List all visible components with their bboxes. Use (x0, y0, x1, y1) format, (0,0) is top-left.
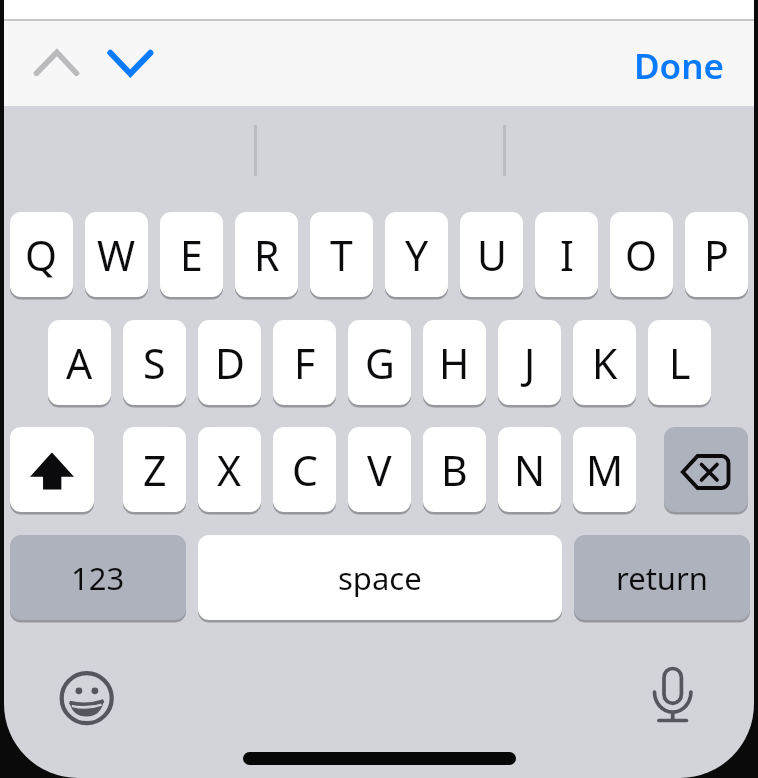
button[interactable]: J (498, 320, 561, 405)
staticText: space (338, 557, 422, 599)
button[interactable] (56, 667, 118, 729)
button[interactable]: T (310, 212, 373, 297)
button[interactable]: N (498, 427, 561, 512)
button[interactable]: S (123, 320, 186, 405)
staticText: L (669, 335, 691, 391)
button[interactable] (644, 660, 702, 726)
button[interactable]: Q (10, 212, 73, 297)
button[interactable]: O (610, 212, 673, 297)
staticText: Y (405, 227, 429, 283)
staticText: I (560, 227, 574, 283)
staticText: D (215, 335, 245, 391)
staticText: V (367, 442, 392, 498)
button[interactable]: D (198, 320, 261, 405)
button[interactable]: R (235, 212, 298, 297)
button[interactable]: F (273, 320, 336, 405)
button[interactable]: P (685, 212, 748, 297)
button[interactable]: H (423, 320, 486, 405)
button[interactable]: Done (614, 34, 744, 98)
button[interactable]: G (348, 320, 411, 405)
button[interactable]: U (460, 212, 523, 297)
staticText: U (477, 227, 507, 283)
staticText: O (625, 227, 658, 283)
button[interactable]: I (535, 212, 598, 297)
staticText: P (704, 227, 729, 283)
button[interactable] (100, 36, 162, 90)
button[interactable]: K (573, 320, 636, 405)
button[interactable]: Z (123, 427, 186, 512)
staticText: Done (634, 42, 725, 90)
button[interactable]: V (348, 427, 411, 512)
button[interactable]: return (574, 535, 750, 620)
staticText: B (441, 442, 468, 498)
staticText: H (439, 335, 470, 391)
staticText: R (254, 227, 280, 283)
button[interactable]: space (198, 535, 562, 620)
staticText: W (97, 227, 136, 283)
button[interactable]: W (85, 212, 148, 297)
staticText: Z (143, 442, 167, 498)
staticText: J (524, 335, 536, 391)
button[interactable]: B (423, 427, 486, 512)
staticText: T (330, 227, 353, 283)
button[interactable] (26, 36, 88, 90)
staticText: 123 (71, 557, 125, 599)
staticText: C (292, 442, 318, 498)
staticText: A (66, 335, 93, 391)
button[interactable] (10, 427, 94, 512)
staticText: X (217, 442, 242, 498)
button[interactable]: M (573, 427, 636, 512)
staticText: return (616, 557, 708, 599)
button[interactable]: L (648, 320, 711, 405)
staticText: N (514, 442, 546, 498)
button[interactable]: C (273, 427, 336, 512)
button[interactable]: Y (385, 212, 448, 297)
staticText: S (143, 335, 166, 391)
staticText: K (592, 335, 618, 391)
staticText: M (586, 442, 624, 498)
staticText: E (180, 227, 203, 283)
button[interactable]: E (160, 212, 223, 297)
staticText: Q (25, 227, 58, 283)
button[interactable]: A (48, 320, 111, 405)
staticText: G (365, 335, 395, 391)
button[interactable]: 123 (10, 535, 186, 620)
button[interactable] (664, 427, 748, 512)
button[interactable]: X (198, 427, 261, 512)
staticText: F (294, 335, 316, 391)
